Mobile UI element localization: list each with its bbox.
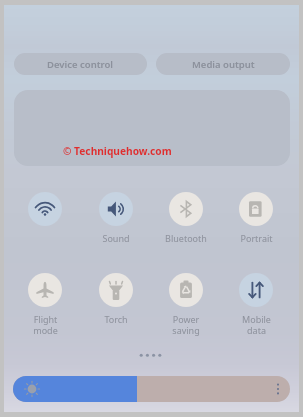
button[interactable]: Bluetooth — [151, 192, 221, 244]
button[interactable]: Mobile data — [221, 273, 291, 336]
button[interactable]: Power saving — [151, 273, 221, 336]
staticText: Device control — [47, 58, 114, 71]
button[interactable]: Device control — [14, 53, 147, 75]
staticText: Mobile data — [242, 313, 271, 336]
button[interactable]: Portrait — [221, 192, 291, 244]
button[interactable]: Media output — [156, 53, 290, 75]
button[interactable]: Flight mode — [10, 273, 80, 336]
other: Mobile data — [239, 273, 273, 307]
staticText: Portrait — [240, 232, 273, 244]
other: Wi-Fi — [28, 192, 62, 226]
button[interactable]: Sound — [81, 192, 151, 244]
other: Bluetooth — [169, 192, 203, 226]
staticText: Torch — [104, 313, 128, 325]
staticText: Flight mode — [33, 313, 58, 336]
other: Sound — [99, 192, 133, 226]
button[interactable] — [13, 376, 290, 402]
other: Power saving — [169, 273, 203, 307]
staticText: Power saving — [172, 313, 200, 336]
button[interactable] — [14, 90, 290, 166]
staticText: Media output — [192, 58, 255, 71]
button[interactable]: Wi-Fi — [10, 192, 80, 232]
button[interactable]: Torch — [81, 273, 151, 325]
other: Flight mode — [28, 273, 62, 307]
other: Portrait — [239, 192, 273, 226]
staticText: © Techniquehow.com — [63, 144, 172, 158]
other: Torch — [99, 273, 133, 307]
staticText: Sound — [102, 232, 130, 244]
staticText: Bluetooth — [165, 232, 207, 244]
